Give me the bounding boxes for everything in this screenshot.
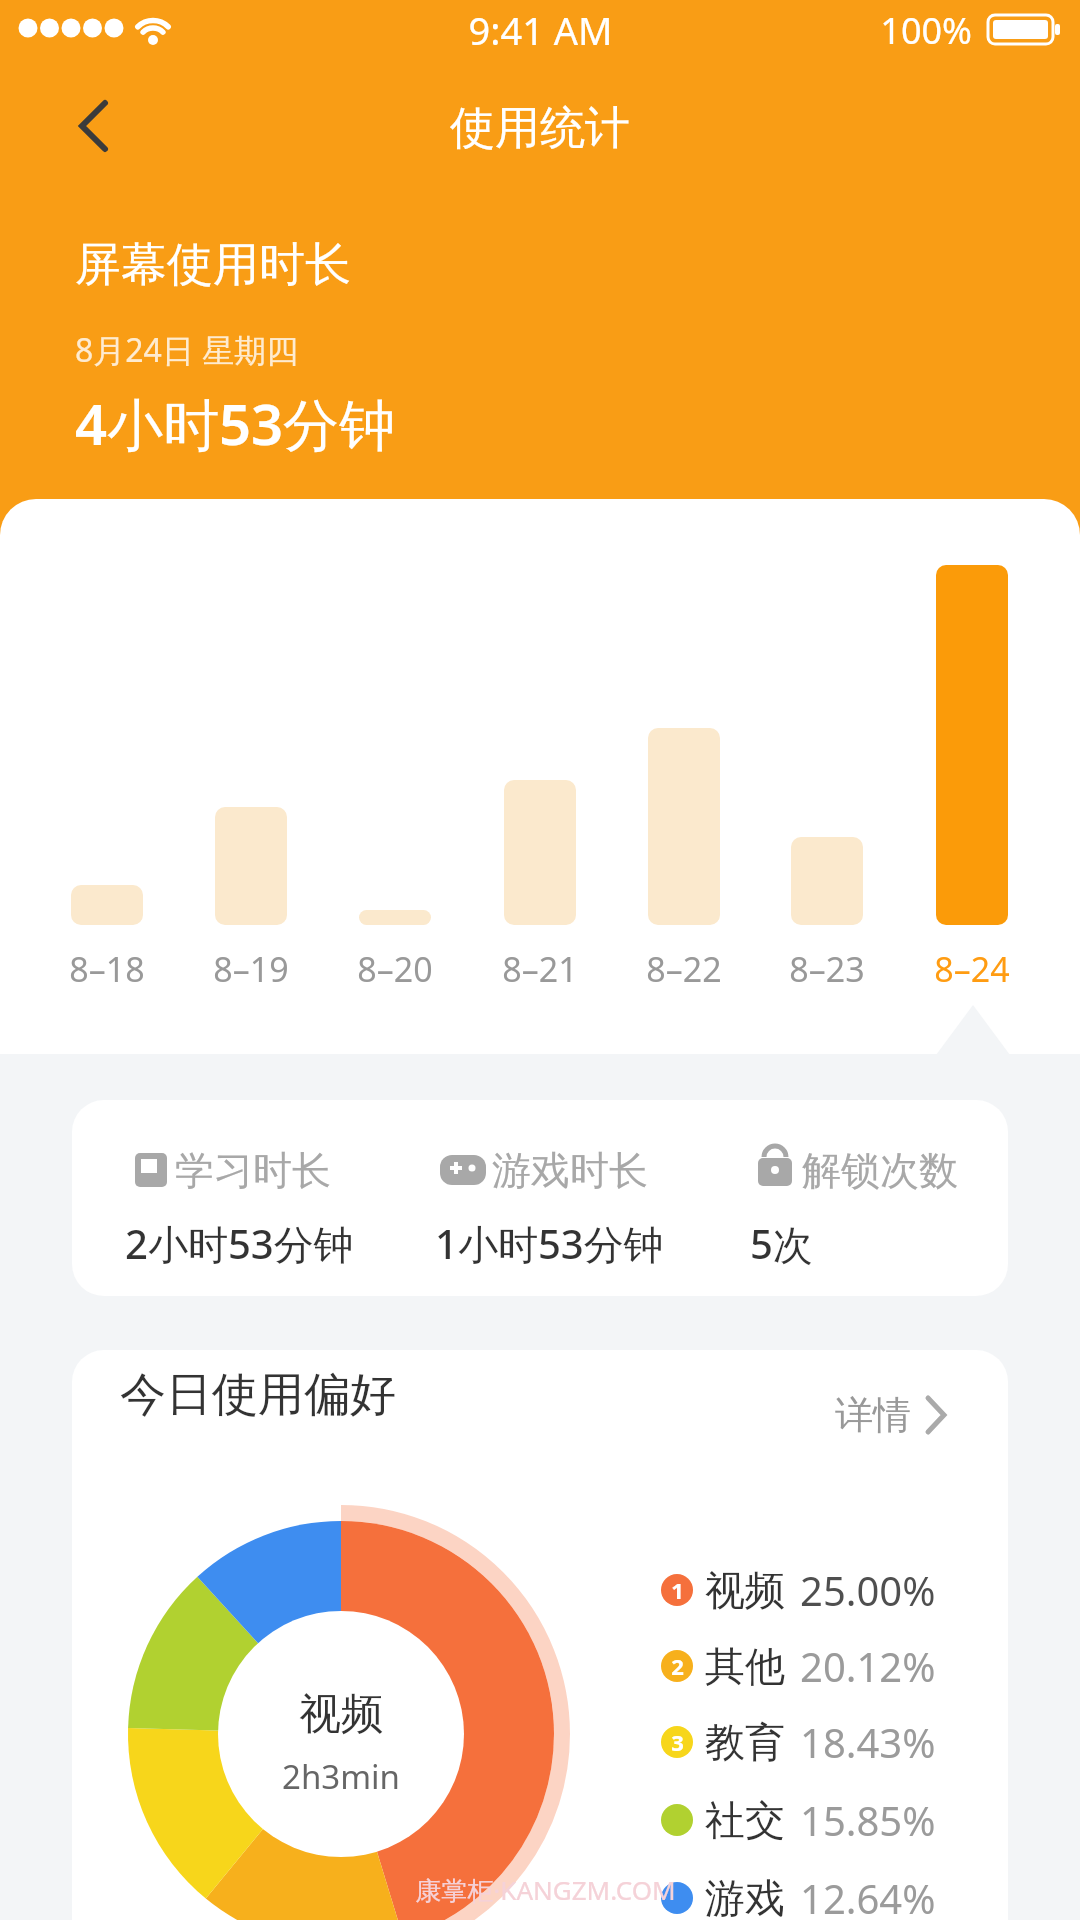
staticText: 学习时长 xyxy=(175,1146,331,1195)
staticText: 25.00% xyxy=(800,1563,936,1617)
staticText: 社交 xyxy=(705,1795,785,1845)
staticText: 5次 xyxy=(750,1216,813,1271)
staticText: 视频 xyxy=(299,1688,383,1741)
staticText: 18.43% xyxy=(800,1715,936,1769)
staticText: 解锁次数 xyxy=(802,1146,958,1195)
button[interactable]: 详情 xyxy=(812,1380,962,1450)
staticText: 8月24日 星期四 xyxy=(75,328,299,372)
staticText: 8–23 xyxy=(789,946,865,992)
staticText: 2 xyxy=(671,1651,684,1681)
button[interactable]: 8–24 xyxy=(900,939,1044,999)
staticText: 3 xyxy=(671,1727,684,1757)
staticText: 使用统计 xyxy=(450,100,630,157)
button[interactable]: 8–19 xyxy=(179,939,323,999)
staticText: 视频 xyxy=(705,1565,785,1615)
button[interactable]: 8–18 xyxy=(35,939,179,999)
staticText: 12.64% xyxy=(800,1871,936,1920)
staticText: 8–20 xyxy=(357,946,433,992)
staticText: 屏幕使用时长 xyxy=(75,236,351,294)
staticText: 1 xyxy=(671,1575,684,1605)
button[interactable]: 8–23 xyxy=(755,939,899,999)
button[interactable] xyxy=(55,90,135,170)
staticText: 教育 xyxy=(705,1717,785,1767)
staticText: 康掌柜·KANGZM.COM xyxy=(415,1872,676,1908)
staticText: 15.85% xyxy=(800,1793,936,1847)
staticText: 2h3min xyxy=(282,1754,400,1799)
button[interactable]: 8–20 xyxy=(323,939,467,999)
button[interactable]: 8–22 xyxy=(612,939,756,999)
staticText: 1小时53分钟 xyxy=(435,1216,664,1271)
staticText: 20.12% xyxy=(800,1639,936,1693)
staticText: 100% xyxy=(880,6,972,52)
staticText: 4小时53分钟 xyxy=(75,385,396,457)
button[interactable]: 8–21 xyxy=(468,939,612,999)
staticText: 游戏 xyxy=(705,1873,785,1920)
staticText: 8–21 xyxy=(502,946,578,992)
staticText: 8–22 xyxy=(646,946,722,992)
staticText: 8–19 xyxy=(213,946,289,992)
staticText: 其他 xyxy=(705,1641,785,1691)
staticText: 8–18 xyxy=(69,946,145,992)
staticText: 8–24 xyxy=(934,946,1010,992)
staticText: 详情 xyxy=(835,1391,911,1439)
staticText: 游戏时长 xyxy=(492,1146,648,1195)
staticText: 今日使用偏好 xyxy=(120,1366,396,1424)
staticText: 9:41 AM xyxy=(468,4,613,54)
staticText: 2小时53分钟 xyxy=(125,1216,354,1271)
